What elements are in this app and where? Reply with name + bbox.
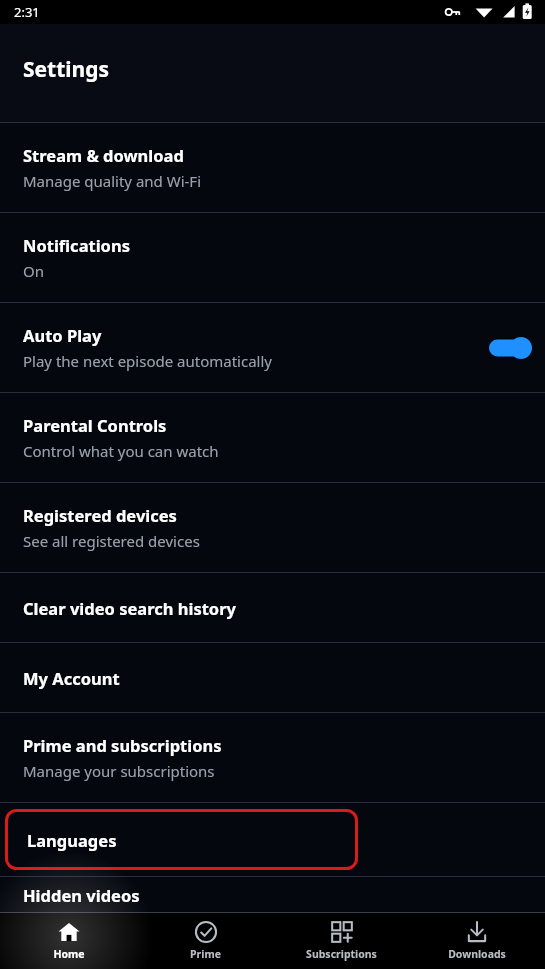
button[interactable]: Parental Controls (0, 393, 545, 482)
staticText: Downloads (448, 947, 506, 961)
button[interactable]: Stream & download (0, 123, 545, 212)
staticText: Settings (23, 55, 110, 84)
staticText: Hidden videos (23, 884, 140, 906)
staticText: Prime (190, 947, 221, 961)
staticText: Manage quality and Wi-Fi (23, 171, 202, 191)
button[interactable]: Hidden videos (0, 877, 545, 912)
staticText: Notifications (23, 234, 130, 256)
staticText: On (23, 261, 44, 281)
staticText: My Account (23, 667, 120, 689)
button[interactable]: Languages (0, 803, 545, 876)
staticText: Stream & download (23, 144, 184, 166)
button[interactable]: Home (0, 912, 137, 969)
staticText: Clear video search history (23, 597, 236, 619)
staticText: Subscriptions (306, 947, 377, 961)
button[interactable]: Auto Play toggle (487, 333, 531, 363)
staticText: Control what you can watch (23, 441, 219, 461)
staticText: Registered devices (23, 504, 177, 526)
button[interactable]: Clear video search history (0, 573, 545, 642)
staticText: Prime and subscriptions (23, 734, 222, 756)
staticText: 2:31 (14, 3, 40, 21)
button[interactable]: Prime (137, 912, 273, 969)
button[interactable]: Notifications (0, 213, 545, 302)
staticText: Auto Play (23, 324, 102, 346)
button[interactable]: Downloads (409, 912, 545, 969)
staticText: Parental Controls (23, 414, 167, 436)
button[interactable]: Prime and subscriptions (0, 713, 545, 802)
button[interactable]: Registered devices (0, 483, 545, 572)
button[interactable]: Subscriptions (273, 912, 409, 969)
button[interactable]: Auto Play (0, 303, 545, 392)
button[interactable]: My Account (0, 643, 545, 712)
staticText: Languages (27, 829, 117, 851)
staticText: Home (53, 947, 85, 961)
staticText: Play the next episode automatically (23, 351, 272, 371)
staticText: See all registered devices (23, 531, 200, 551)
staticText: Manage your subscriptions (23, 761, 215, 781)
